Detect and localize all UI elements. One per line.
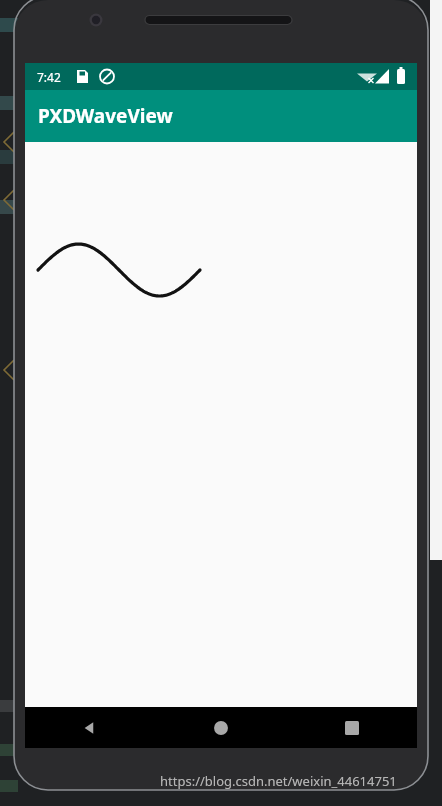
button[interactable]: Back bbox=[25, 707, 155, 748]
staticText: https://blog.csdn.net/weixin_44614751 bbox=[160, 772, 397, 790]
staticText: PXDWaveView bbox=[38, 103, 173, 129]
button[interactable]: PXDWaveView bbox=[25, 90, 417, 142]
button[interactable]: Home bbox=[155, 707, 286, 748]
button[interactable]: Recent apps bbox=[286, 707, 417, 748]
staticText: 7:42 bbox=[37, 69, 61, 85]
